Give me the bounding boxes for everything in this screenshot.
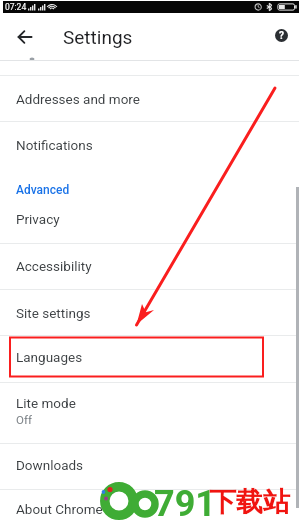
button[interactable]: Help bbox=[268, 22, 294, 48]
staticText: ? bbox=[279, 30, 284, 42]
button[interactable]: Site settings bbox=[0, 290, 299, 335]
staticText: Site settings bbox=[16, 305, 91, 321]
staticText: Settings bbox=[63, 26, 133, 48]
button[interactable]: About Chrome bbox=[0, 490, 299, 526]
staticText: 791 bbox=[154, 483, 216, 525]
button[interactable]: Lite mode bbox=[0, 383, 299, 443]
staticText: About Chrome bbox=[16, 501, 103, 517]
button[interactable]: Downloads bbox=[0, 444, 299, 489]
staticText: Privacy bbox=[16, 211, 60, 227]
staticText: Off bbox=[16, 413, 32, 426]
staticText: Notifications bbox=[16, 137, 93, 153]
button[interactable]: Privacy bbox=[0, 198, 299, 243]
button[interactable]: Addresses and more bbox=[0, 76, 299, 121]
button[interactable]: Back bbox=[9, 21, 41, 53]
button[interactable]: Languages bbox=[0, 336, 299, 382]
button[interactable]: Notifications bbox=[0, 122, 299, 167]
staticText: 07:24 bbox=[5, 2, 27, 12]
staticText: Accessibility bbox=[16, 258, 92, 274]
staticText: Downloads bbox=[16, 457, 84, 473]
button[interactable]: Accessibility bbox=[0, 244, 299, 289]
staticText: Advanced bbox=[16, 183, 70, 197]
staticText: 下载站 bbox=[209, 485, 290, 519]
staticText: Languages bbox=[16, 349, 83, 365]
staticText: Addresses and more bbox=[16, 91, 140, 107]
staticText: Lite mode bbox=[16, 395, 76, 411]
